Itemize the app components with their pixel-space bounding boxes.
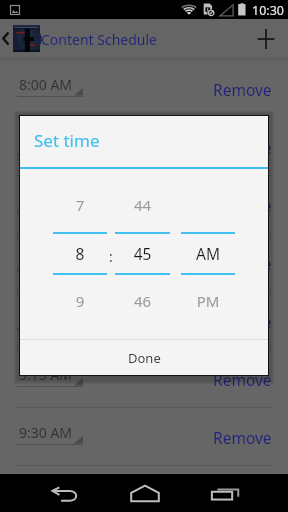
button[interactable]: 9:15 AM xyxy=(0,350,288,408)
staticText: Set time xyxy=(34,129,100,152)
button[interactable]: Remove xyxy=(197,301,288,342)
button[interactable]: Back xyxy=(32,474,96,512)
staticText: AM xyxy=(181,243,235,264)
staticText: : xyxy=(109,247,113,266)
button[interactable]: 9:30 AM xyxy=(0,408,288,466)
button[interactable]: Remove xyxy=(197,185,288,226)
button[interactable]: Home xyxy=(112,474,176,512)
button[interactable]: 9:00 AM xyxy=(0,292,288,350)
button[interactable]: Remove xyxy=(197,417,288,458)
button[interactable]: Recent apps xyxy=(192,474,256,512)
staticText: Remove xyxy=(213,195,272,216)
staticText: Done xyxy=(128,349,161,367)
button[interactable]: 8:45 AM xyxy=(0,234,288,292)
button[interactable]: Remove xyxy=(197,243,288,284)
button[interactable]: 8:00 AM xyxy=(0,60,288,118)
staticText: Remove xyxy=(213,311,272,332)
staticText: 9:45 AM xyxy=(19,481,73,500)
staticText: 8:15 AM xyxy=(19,133,73,152)
button[interactable]: Done xyxy=(20,339,268,375)
button[interactable]: Remove xyxy=(197,359,288,400)
button[interactable]: 44 xyxy=(115,190,170,315)
button[interactable]: AM xyxy=(181,190,235,315)
button[interactable]: Remove xyxy=(197,475,288,512)
button[interactable]: 9:45 AM xyxy=(0,466,288,512)
staticText: 8:30 AM xyxy=(19,191,73,210)
staticText: Remove xyxy=(213,137,272,158)
button[interactable]: Remove xyxy=(197,127,288,168)
button[interactable]: 7 xyxy=(53,190,107,315)
staticText: Remove xyxy=(213,427,272,448)
button[interactable]: 8:30 AM xyxy=(0,176,288,234)
staticText: 8 xyxy=(53,243,107,264)
button[interactable]: Add xyxy=(244,19,288,58)
staticText: 46 xyxy=(115,291,170,311)
staticText: 10:30 xyxy=(252,2,284,19)
staticText: Remove xyxy=(213,485,272,506)
staticText: 45 xyxy=(115,243,170,264)
staticText: Content Schedule xyxy=(41,30,157,49)
staticText: 9:15 AM xyxy=(19,365,73,384)
staticText: Remove xyxy=(213,79,272,100)
staticText: 8:45 AM xyxy=(19,249,73,268)
staticText: 44 xyxy=(115,195,170,215)
staticText: 7 xyxy=(53,195,107,215)
staticText: PM xyxy=(181,291,235,311)
staticText: Remove xyxy=(213,369,272,390)
staticText: 9 xyxy=(53,291,107,311)
staticText: 9:00 AM xyxy=(19,307,73,326)
button[interactable]: Navigate up xyxy=(0,19,13,58)
button[interactable]: Remove xyxy=(197,69,288,110)
staticText: Remove xyxy=(213,253,272,274)
staticText: 8:00 AM xyxy=(19,75,73,94)
staticText: 9:30 AM xyxy=(19,423,73,442)
button[interactable]: 8:15 AM xyxy=(0,118,288,176)
